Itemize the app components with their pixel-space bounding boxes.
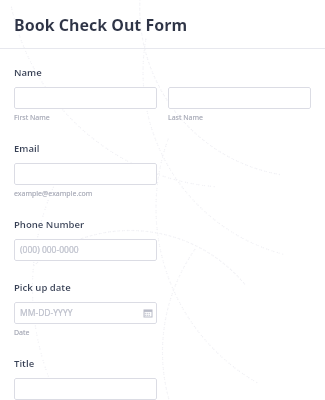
staticText: Pick up date [14,281,71,294]
staticText: Email [14,142,40,155]
button[interactable]: (000) 000-0000 [14,239,157,261]
staticText: Last Name [168,113,204,123]
staticText: MM-DD-YYYY [20,307,73,319]
staticText: Name [14,66,42,79]
staticText: Book Check Out Form [14,14,187,36]
button[interactable] [14,87,157,109]
staticText: example@example.com [14,189,93,199]
staticText: (000) 000-0000 [20,244,79,256]
button[interactable]: Open calendar [144,309,152,317]
staticText: Title [14,357,35,370]
staticText: First Name [14,113,50,123]
button[interactable]: MM-DD-YYYY [14,302,157,324]
staticText: Phone Number [14,218,85,231]
staticText: Date [14,328,30,338]
button[interactable] [14,378,157,400]
button[interactable] [14,163,157,185]
button[interactable] [168,87,311,109]
